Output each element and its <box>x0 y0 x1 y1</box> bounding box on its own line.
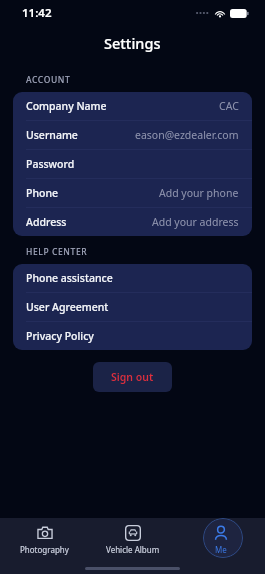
button[interactable]: Username <box>13 121 252 150</box>
staticText: HELP CENTER <box>26 246 88 258</box>
staticText: Add your phone <box>159 186 239 200</box>
staticText: Sign out <box>111 370 154 384</box>
staticText: User Agreement <box>26 300 109 314</box>
button[interactable]: Phone assistance <box>13 264 252 293</box>
staticText: Vehicle Album <box>106 544 160 555</box>
staticText: CAC <box>219 99 239 113</box>
button[interactable]: Photography <box>0 518 89 562</box>
button[interactable]: User Agreement <box>13 293 252 322</box>
staticText: eason@ezdealer.com <box>135 128 239 142</box>
staticText: Phone assistance <box>26 271 113 285</box>
staticText: Username <box>26 128 78 142</box>
staticText: Company Name <box>26 99 107 113</box>
staticText: Phone <box>26 186 59 200</box>
staticText: 11:42 <box>22 5 52 21</box>
button[interactable]: Privacy Policy <box>13 322 252 350</box>
button[interactable]: Sign out <box>93 362 172 392</box>
staticText: Address <box>26 215 67 229</box>
button[interactable]: Phone <box>13 179 252 208</box>
button[interactable]: Company Name <box>13 92 252 121</box>
button[interactable]: Address <box>13 208 252 236</box>
button[interactable]: Me <box>177 518 265 562</box>
staticText: Password <box>26 157 75 171</box>
staticText: ACCOUNT <box>26 74 71 86</box>
staticText: Add your address <box>152 215 239 229</box>
staticText: Privacy Policy <box>26 329 94 343</box>
staticText: Me <box>215 544 227 555</box>
button[interactable]: Password <box>13 150 252 179</box>
button[interactable]: Me <box>177 518 265 562</box>
button[interactable]: Vehicle Album <box>89 518 177 562</box>
staticText: Photography <box>20 544 69 555</box>
staticText: Me <box>215 544 227 555</box>
staticText: Settings <box>104 33 161 53</box>
